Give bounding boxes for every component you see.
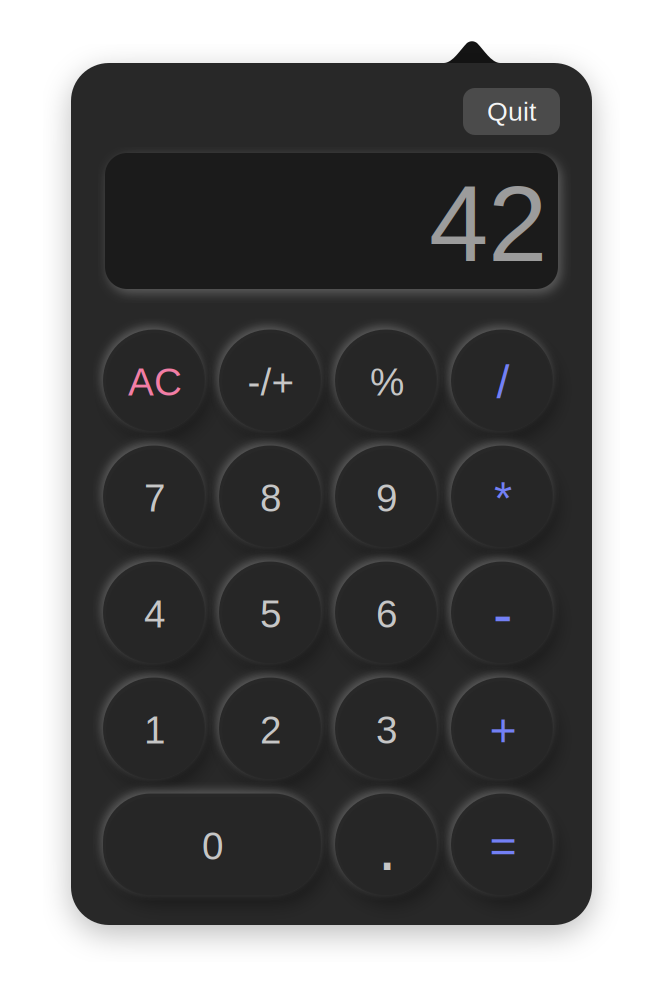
button[interactable]: 6 (338, 565, 436, 663)
staticText: * (494, 472, 512, 524)
button[interactable]: 3 (338, 681, 436, 779)
button[interactable]: 1 (106, 681, 204, 779)
button[interactable]: - (454, 565, 552, 663)
staticText: % (370, 360, 404, 404)
staticText: Quit (487, 97, 536, 126)
staticText: 5 (260, 592, 282, 636)
staticText: = (489, 820, 516, 872)
staticText: 4 (144, 592, 166, 636)
button[interactable]: / (454, 333, 552, 431)
staticText: 7 (144, 476, 166, 520)
button[interactable]: Quit (463, 88, 560, 135)
button[interactable]: AC (106, 333, 204, 431)
button[interactable]: % (338, 333, 436, 431)
staticText: 0 (202, 824, 224, 868)
button[interactable]: + (454, 681, 552, 779)
staticText: + (489, 704, 516, 756)
staticText: . (377, 807, 396, 885)
staticText: / (496, 356, 509, 408)
button[interactable]: * (454, 449, 552, 547)
button[interactable]: 8 (222, 449, 320, 547)
button[interactable]: = (454, 797, 552, 895)
staticText: AC (128, 360, 182, 404)
button[interactable]: 7 (106, 449, 204, 547)
staticText: - (493, 581, 513, 647)
button[interactable]: 2 (222, 681, 320, 779)
button[interactable]: 0 (106, 797, 320, 895)
button[interactable]: . (338, 797, 436, 895)
button[interactable]: 5 (222, 565, 320, 663)
staticText: 42 (429, 164, 547, 284)
button[interactable]: 9 (338, 449, 436, 547)
staticText: 1 (144, 708, 166, 752)
staticText: 3 (376, 708, 398, 752)
staticText: 8 (260, 476, 282, 520)
staticText: 2 (260, 708, 282, 752)
staticText: 9 (376, 476, 398, 520)
staticText: 6 (376, 592, 398, 636)
button[interactable]: -/+ (222, 333, 320, 431)
button[interactable]: 4 (106, 565, 204, 663)
staticText: -/+ (247, 360, 294, 404)
